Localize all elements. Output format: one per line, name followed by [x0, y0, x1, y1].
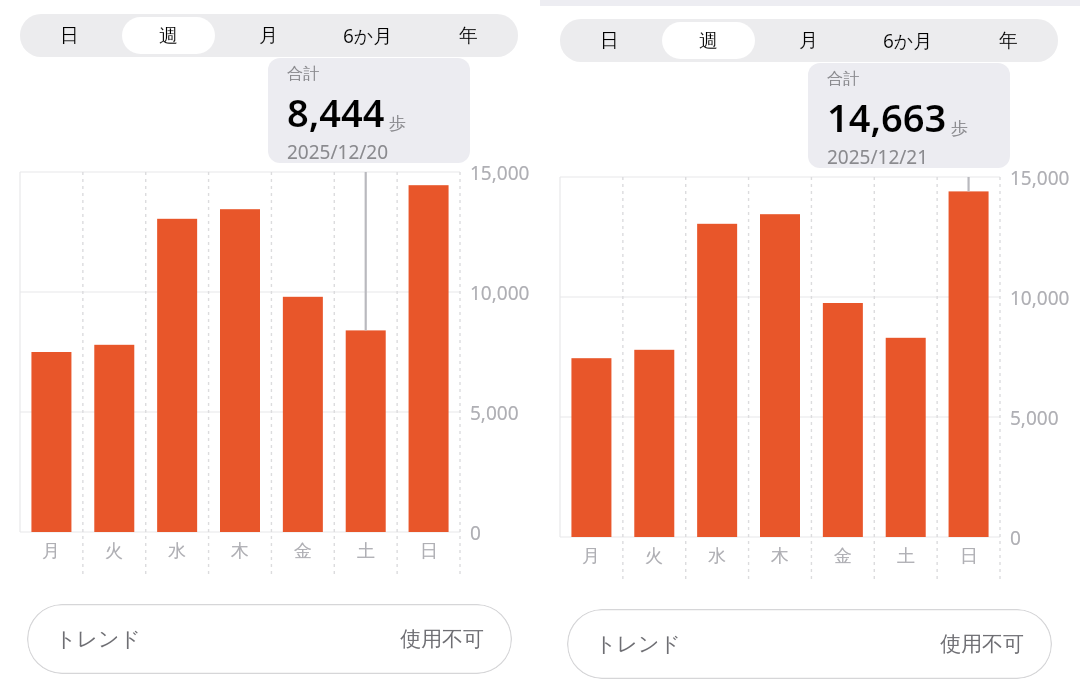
- staticText: 合計: [287, 64, 319, 84]
- staticText: 年: [459, 24, 478, 48]
- button[interactable]: 月: [221, 17, 315, 54]
- button[interactable]: 週: [122, 17, 215, 54]
- staticText: 歩: [389, 113, 406, 134]
- button[interactable]: 6か月: [321, 17, 415, 54]
- staticText: 木: [231, 540, 249, 563]
- button[interactable]: 月: [761, 22, 855, 59]
- staticText: 歩: [951, 118, 968, 139]
- staticText: 合計: [827, 69, 859, 89]
- staticText: 水: [708, 545, 726, 568]
- staticText: トレンド: [55, 626, 141, 652]
- staticText: 0: [470, 520, 481, 546]
- staticText: 月: [259, 24, 278, 48]
- staticText: 5,000: [470, 400, 519, 426]
- staticText: 14,663: [827, 91, 947, 143]
- button[interactable]: トレンド: [567, 609, 1052, 679]
- button[interactable]: 週: [662, 22, 755, 59]
- staticText: 週: [699, 29, 718, 53]
- button[interactable]: 年: [421, 17, 515, 54]
- staticText: 10,000: [470, 280, 530, 306]
- staticText: 年: [999, 29, 1018, 53]
- button[interactable]: 6か月: [861, 22, 955, 59]
- staticText: 日: [60, 24, 79, 48]
- staticText: トレンド: [595, 631, 681, 657]
- staticText: 木: [771, 545, 789, 568]
- staticText: 日: [600, 29, 619, 53]
- staticText: 週: [159, 24, 178, 48]
- staticText: 金: [834, 545, 852, 568]
- button[interactable]: トレンド: [27, 604, 512, 674]
- staticText: 使用不可: [940, 631, 1024, 657]
- staticText: 6か月: [343, 23, 393, 49]
- staticText: 月: [582, 545, 600, 568]
- staticText: 15,000: [470, 160, 530, 186]
- button[interactable]: 日: [563, 22, 656, 59]
- staticText: 5,000: [1010, 405, 1059, 431]
- button[interactable]: 年: [961, 22, 1055, 59]
- staticText: 土: [897, 545, 915, 568]
- staticText: 日: [960, 545, 978, 568]
- staticText: 6か月: [883, 28, 933, 54]
- staticText: 火: [645, 545, 663, 568]
- staticText: 水: [168, 540, 186, 563]
- staticText: 使用不可: [400, 626, 484, 652]
- button[interactable]: 日: [23, 17, 116, 54]
- staticText: 土: [357, 540, 375, 563]
- staticText: 10,000: [1010, 285, 1070, 311]
- staticText: 火: [105, 540, 123, 563]
- staticText: 8,444: [287, 86, 385, 138]
- staticText: 日: [420, 540, 438, 563]
- staticText: 2025/12/21: [827, 144, 929, 168]
- staticText: 15,000: [1010, 165, 1070, 191]
- staticText: 月: [42, 540, 60, 563]
- staticText: 0: [1010, 525, 1021, 551]
- staticText: 2025/12/20: [287, 139, 389, 163]
- staticText: 月: [799, 29, 818, 53]
- staticText: 金: [294, 540, 312, 563]
